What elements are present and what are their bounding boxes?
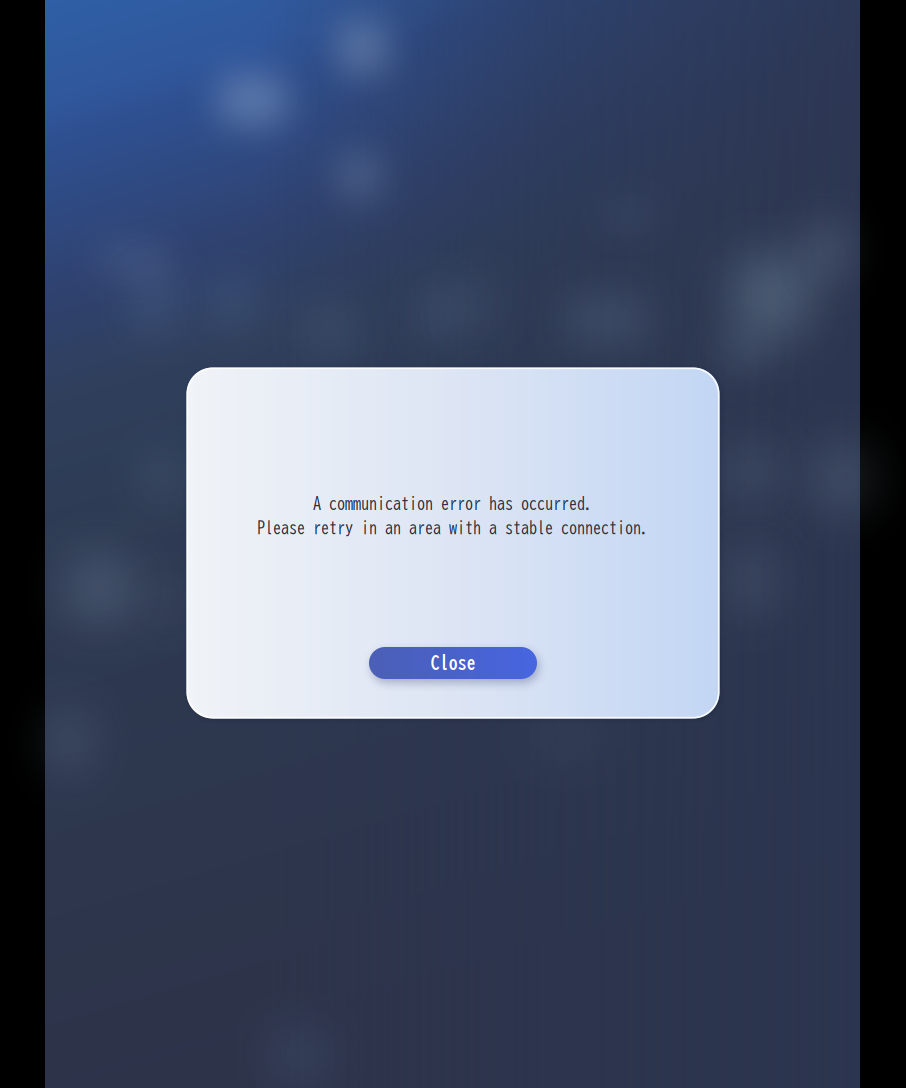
staticText: Close <box>430 654 475 672</box>
staticText: Please retry in an area with a stable co… <box>257 520 649 536</box>
button[interactable]: Close <box>369 647 537 679</box>
staticText: A communication error has occurred. <box>313 496 593 512</box>
